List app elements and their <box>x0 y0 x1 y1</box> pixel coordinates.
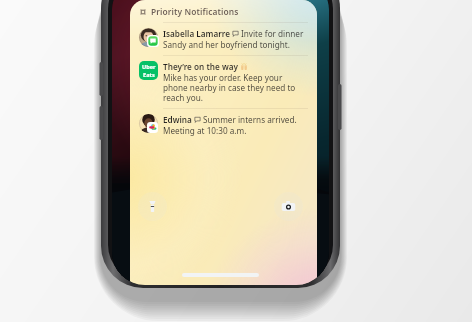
staticText: Summer interns arrived. <box>203 114 297 125</box>
staticText: Mike has your order. Keep your phone nea… <box>163 72 308 103</box>
button[interactable]: Edwina <box>139 114 308 136</box>
staticText: Edwina <box>163 114 192 125</box>
staticText: Lia Longo Savita booked house … <box>160 132 275 142</box>
button[interactable]: Uber <box>139 61 308 103</box>
button[interactable]: Isabella Lamarre <box>139 28 308 50</box>
staticText: Invite for dinner with <box>241 28 308 39</box>
button[interactable]: Camera <box>274 192 303 221</box>
button[interactable]: Priority Notifications <box>130 0 317 285</box>
staticText: Meeting at 10:30 a.m. <box>163 125 247 136</box>
button[interactable]: Flashlight <box>138 192 167 221</box>
staticText: Eats <box>143 71 155 79</box>
staticText: They’re on the way <box>163 61 238 72</box>
staticText: Uber <box>142 63 156 71</box>
staticText: Sandy and her boyfriend tonight. <box>163 39 290 50</box>
staticText: Isabella Lamarre <box>163 28 230 39</box>
staticText: Priority Notifications <box>151 6 239 17</box>
button[interactable]: Lia Longo Savita booked house … <box>134 124 313 150</box>
